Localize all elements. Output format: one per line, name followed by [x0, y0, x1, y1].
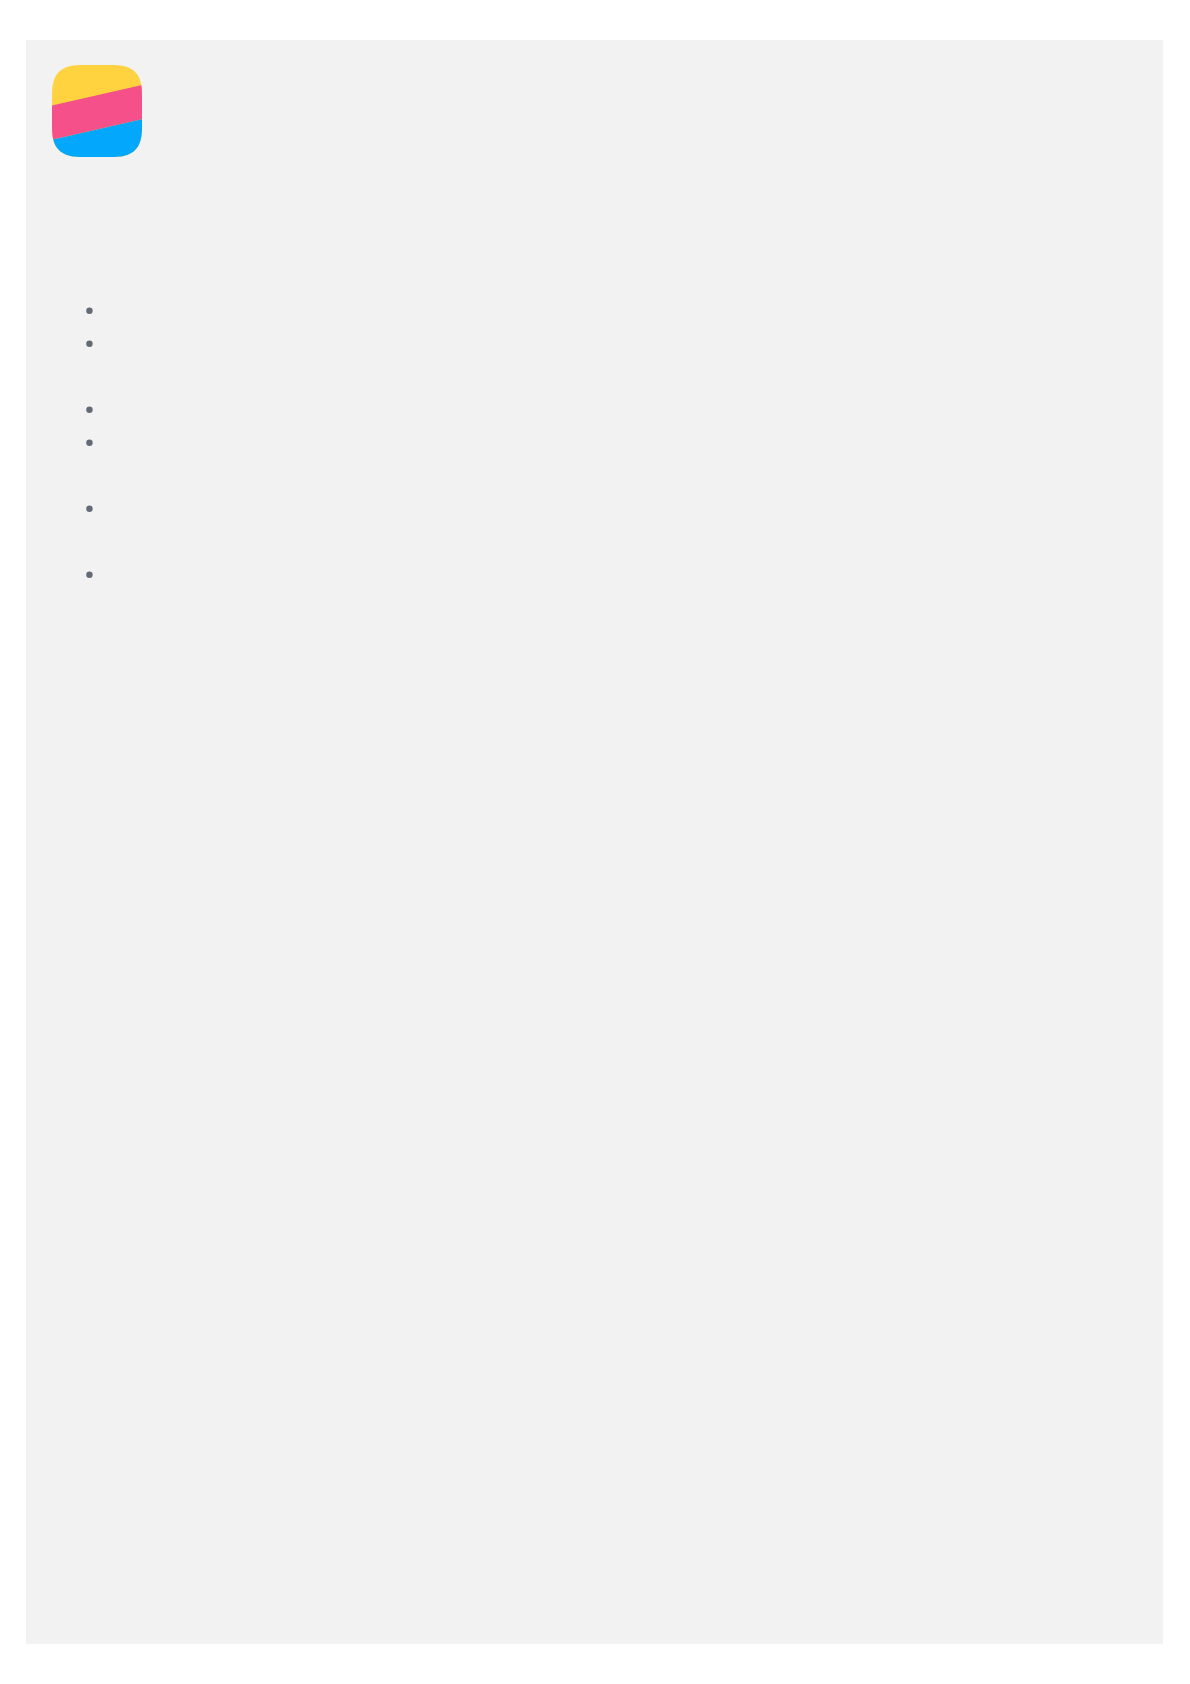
button[interactable]: List item two — [86, 327, 1126, 360]
button[interactable]: List item four — [86, 426, 1126, 459]
button[interactable]: Open app — [52, 65, 142, 157]
button[interactable]: List item three — [86, 393, 1126, 426]
button[interactable]: List item five — [86, 492, 1126, 525]
button[interactable]: List item six — [86, 558, 1126, 591]
button[interactable]: List item one — [86, 294, 1126, 327]
